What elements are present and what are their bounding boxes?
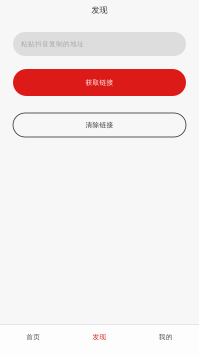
staticText: 获取链接 bbox=[85, 78, 113, 87]
staticText: 清除链接 bbox=[85, 121, 113, 129]
button[interactable]: 发现 bbox=[66, 325, 133, 355]
button[interactable]: 清除链接 bbox=[13, 113, 186, 137]
staticText: 首页 bbox=[26, 333, 40, 341]
button[interactable]: 获取链接 bbox=[13, 69, 186, 96]
staticText: 粘贴抖音复制的地址 bbox=[21, 40, 84, 48]
button[interactable]: 首页 bbox=[0, 325, 66, 355]
button[interactable]: 粘贴抖音复制的地址 bbox=[13, 32, 186, 56]
staticText: 发现 bbox=[91, 5, 107, 15]
button[interactable]: 我的 bbox=[133, 325, 199, 355]
staticText: 我的 bbox=[159, 333, 173, 341]
staticText: 发现 bbox=[92, 333, 106, 341]
